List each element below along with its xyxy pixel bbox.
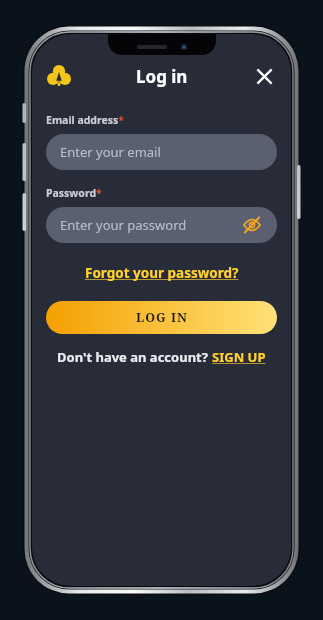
- staticText: Password*: [46, 186, 102, 200]
- button[interactable]: Forgot your password?: [79, 261, 245, 285]
- staticText: LOG IN: [136, 309, 188, 326]
- button[interactable]: Enter your password: [46, 207, 277, 243]
- staticText: Log in: [136, 65, 188, 88]
- staticText: Enter your email: [60, 143, 161, 161]
- button[interactable]: App logo: [44, 61, 74, 91]
- staticText: Enter your password: [60, 216, 187, 234]
- staticText: Email address*: [46, 113, 124, 127]
- staticText: SIGN UP: [212, 348, 266, 366]
- button[interactable]: Show password: [241, 214, 263, 236]
- button[interactable]: Enter your email: [46, 134, 277, 170]
- button[interactable]: Don't have an account?: [57, 348, 266, 366]
- button[interactable]: Close: [249, 61, 279, 91]
- staticText: Don't have an account?: [57, 348, 212, 366]
- button[interactable]: LOG IN: [46, 301, 277, 334]
